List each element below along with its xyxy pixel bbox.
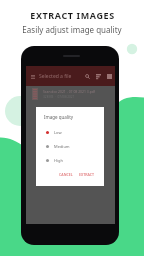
button[interactable]: EXTRACT xyxy=(76,170,98,179)
button[interactable]: Low xyxy=(36,125,104,139)
button[interactable]: Search xyxy=(83,72,92,81)
staticText: Scan doc 2021 - 07 08 2021 3.pdf xyxy=(43,89,95,94)
button[interactable]: Scan doc 2021 - 07 08 2021 3.pdf xyxy=(26,86,115,104)
button[interactable]: Selected a file xyxy=(39,73,72,80)
staticText: Low xyxy=(54,130,62,135)
staticText: Medium xyxy=(54,144,70,149)
button[interactable]: CANCEL xyxy=(56,170,76,179)
button[interactable]: Grid view xyxy=(105,72,114,81)
staticText: Easily adjust image quality xyxy=(22,24,122,35)
staticText: EXTRACT IMAGES xyxy=(30,9,115,21)
button[interactable]: Sort xyxy=(94,72,103,81)
button[interactable]: Navigation menu xyxy=(28,72,37,81)
staticText: 328 KB · 07/08/2021 xyxy=(43,95,75,99)
button[interactable]: Medium xyxy=(36,139,104,153)
staticText: Image quality xyxy=(44,114,74,120)
staticText: High xyxy=(54,158,63,163)
button[interactable]: High xyxy=(36,153,104,167)
